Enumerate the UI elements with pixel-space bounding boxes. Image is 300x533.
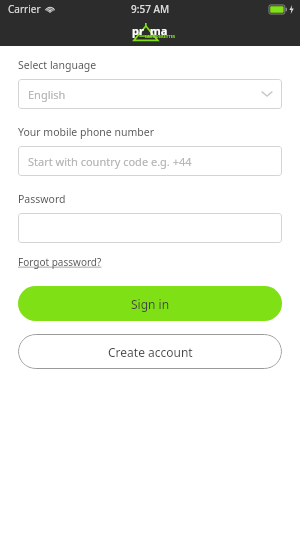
staticText: Sign in [131,296,170,312]
staticText: ma [150,23,168,38]
staticText: LAUNDERETTES [145,34,176,39]
button[interactable]: Create account [18,334,282,369]
button[interactable]: Forgot password? [18,255,102,269]
button[interactable]: English [18,79,282,109]
staticText: Forgot password? [18,255,102,269]
staticText: Password [18,192,66,206]
staticText: Your mobile phone number [18,125,154,139]
staticText: English [28,87,66,102]
button[interactable]: Start with country code e.g. +44 [18,146,282,176]
staticText: Select language [18,58,97,72]
staticText: pr [132,23,144,38]
staticText: Start with country code e.g. +44 [28,154,192,169]
staticText: Carrier [8,2,41,16]
staticText: Create account [108,344,193,360]
button[interactable]: Sign in [18,286,282,321]
button[interactable] [18,213,282,243]
staticText: 9:57 AM [131,2,170,16]
